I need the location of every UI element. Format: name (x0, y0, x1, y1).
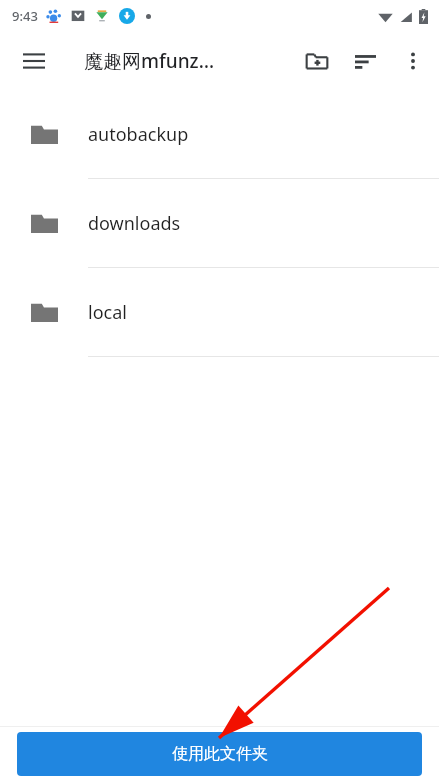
staticText: autobackup (88, 122, 189, 147)
staticText: downloads (88, 211, 181, 236)
button[interactable]: Create new folder (293, 37, 341, 85)
button[interactable]: More options (389, 37, 437, 85)
button[interactable]: downloads (0, 179, 439, 268)
button[interactable]: Menu (10, 37, 58, 85)
staticText: 魔趣网mfunz… (84, 48, 215, 74)
staticText: 9:43 (12, 7, 38, 25)
button[interactable]: Sort (341, 37, 389, 85)
button[interactable]: autobackup (0, 90, 439, 179)
staticText: local (88, 300, 127, 325)
staticText: 使用此文件夹 (172, 744, 268, 764)
button[interactable]: 使用此文件夹 (17, 732, 422, 776)
button[interactable]: local (0, 268, 439, 357)
